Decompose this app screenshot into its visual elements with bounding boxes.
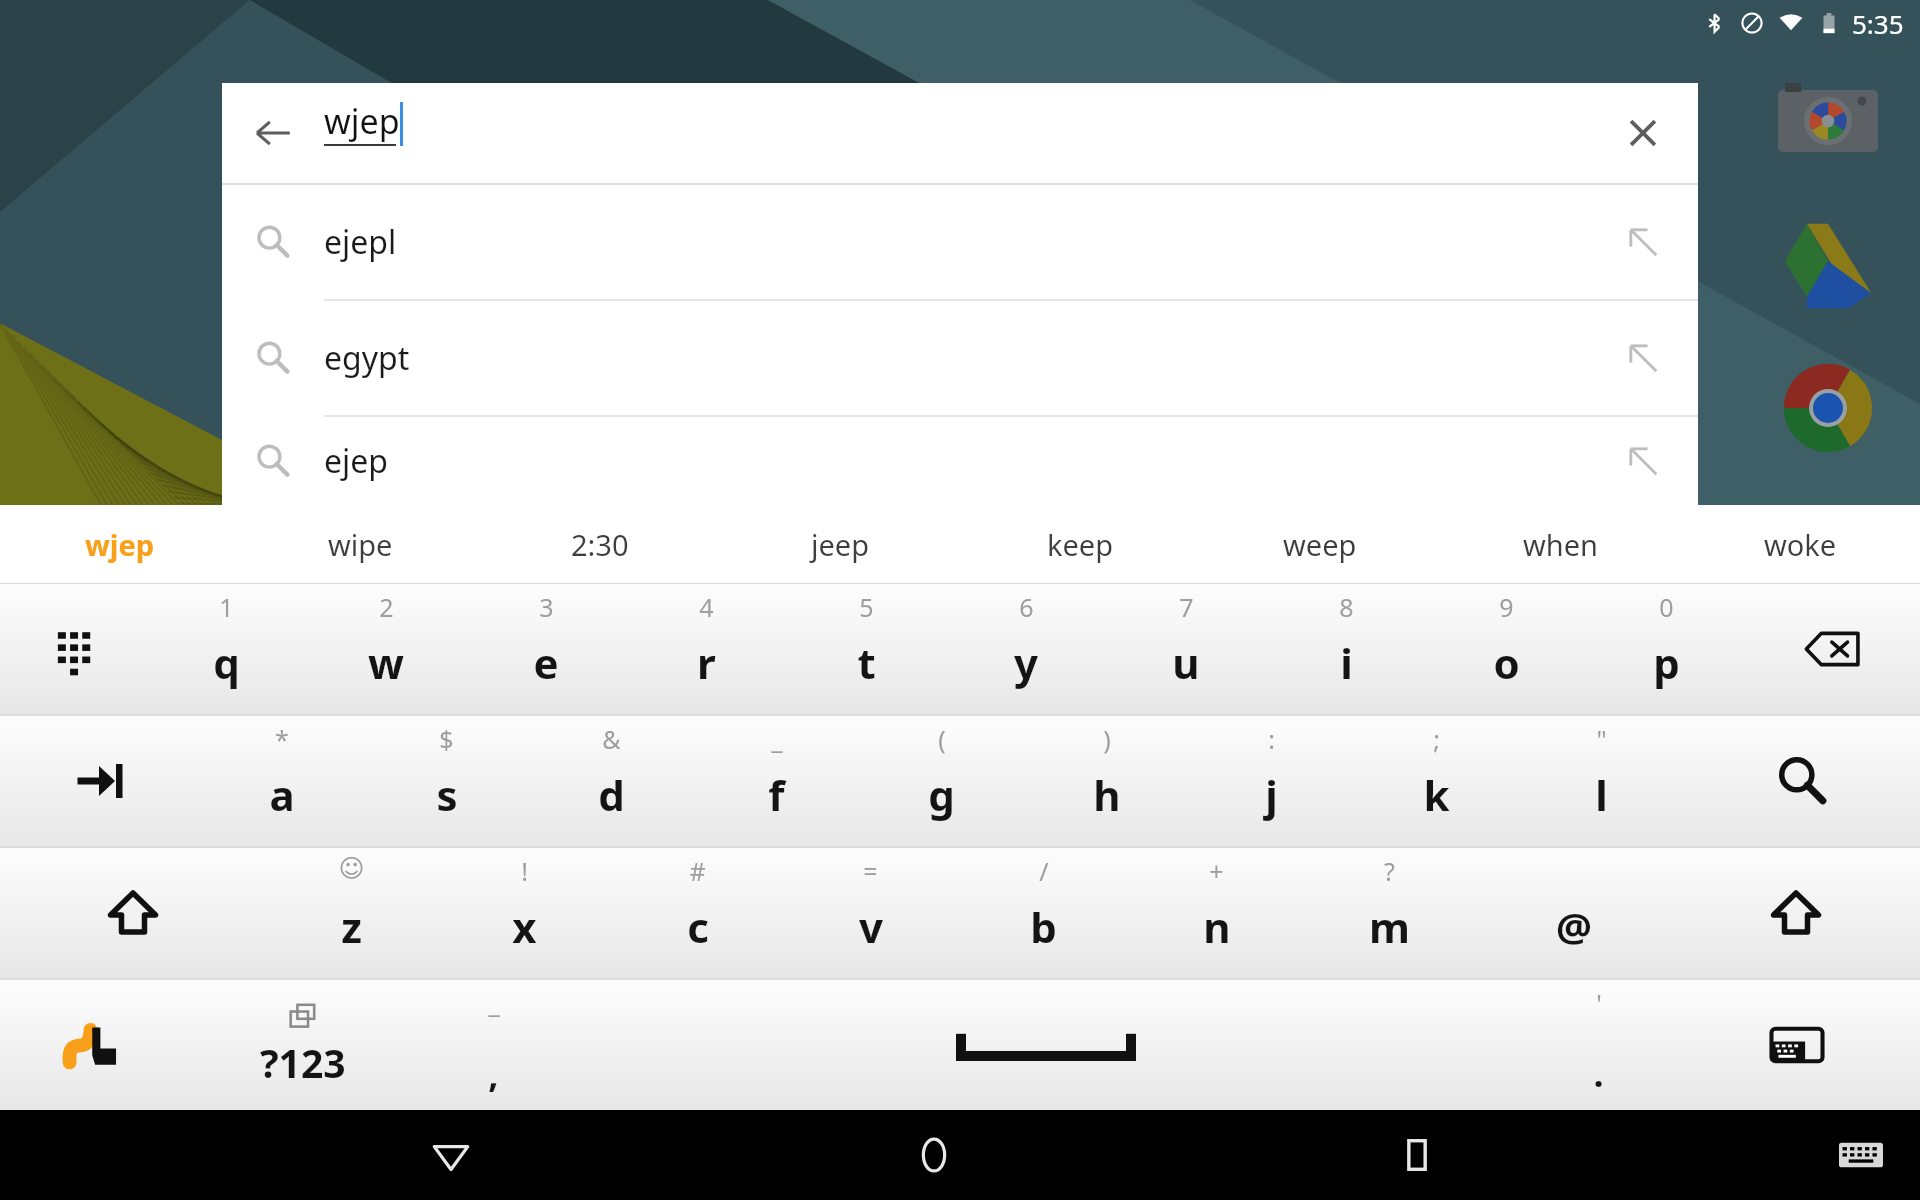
staticText: p: [1653, 634, 1680, 691]
staticText: @: [1556, 899, 1592, 953]
staticText: ?: [1384, 854, 1395, 888]
button[interactable]: 2:30: [480, 505, 720, 583]
button[interactable]: Number pad: [0, 584, 146, 714]
staticText: .: [1593, 1049, 1604, 1098]
button[interactable]: weep: [1200, 505, 1440, 583]
staticText: wjep: [324, 98, 400, 144]
staticText: wipe: [328, 525, 393, 564]
staticText: !: [521, 854, 528, 888]
staticText: weep: [1283, 525, 1357, 564]
button[interactable]: $: [364, 716, 529, 846]
staticText: 8: [1339, 590, 1354, 624]
button[interactable]: Chrome: [1772, 352, 1884, 464]
staticText: u: [1172, 634, 1200, 691]
staticText: :: [1268, 722, 1275, 756]
staticText: ☺: [338, 854, 365, 883]
button[interactable]: 8: [1266, 584, 1426, 714]
button[interactable]: Tab: [0, 716, 200, 846]
button[interactable]: :: [1189, 716, 1354, 846]
button[interactable]: woke: [1680, 505, 1920, 583]
button[interactable]: ": [1519, 716, 1684, 846]
button[interactable]: #: [611, 848, 784, 978]
staticText: z: [341, 898, 362, 955]
button[interactable]: Insert egypt: [1588, 301, 1698, 415]
button[interactable]: Backspace: [1746, 584, 1920, 714]
button[interactable]: Insert ejep: [1588, 417, 1698, 505]
button[interactable]: Back: [401, 1110, 501, 1200]
staticText: 2: [379, 590, 394, 624]
button[interactable]: 1: [146, 584, 306, 714]
button[interactable]: wipe: [240, 505, 480, 583]
staticText: /: [1039, 854, 1049, 888]
staticText: f: [768, 766, 785, 823]
button[interactable]: Shift: [0, 848, 265, 978]
staticText: n: [1203, 898, 1231, 955]
staticText: ;: [1433, 722, 1440, 756]
button[interactable]: Space: [568, 980, 1524, 1110]
button[interactable]: !: [438, 848, 611, 978]
staticText: e: [533, 634, 559, 691]
button[interactable]: keep: [960, 505, 1200, 583]
button[interactable]: +: [1130, 848, 1303, 978]
button[interactable]: (: [859, 716, 1024, 846]
staticText: h: [1093, 766, 1121, 823]
button[interactable]: _: [419, 980, 568, 1110]
staticText: 9: [1499, 590, 1514, 624]
staticText: 2:30: [571, 525, 629, 564]
button[interactable]: Back: [222, 83, 324, 183]
button[interactable]: @: [1476, 848, 1672, 978]
staticText: b: [1030, 898, 1057, 955]
staticText: jeep: [811, 525, 870, 564]
button[interactable]: 9: [1426, 584, 1586, 714]
button[interactable]: 6: [946, 584, 1106, 714]
staticText: 1: [219, 590, 234, 624]
button[interactable]: ejepl: [222, 185, 1698, 299]
button[interactable]: Hide keyboard: [1673, 980, 1920, 1110]
button[interactable]: Switch keyboard: [1816, 1110, 1906, 1200]
staticText: 3: [539, 590, 554, 624]
staticText: l: [1595, 766, 1608, 823]
button[interactable]: Gesture typing: [0, 980, 187, 1110]
button[interactable]: when: [1440, 505, 1680, 583]
staticText: when: [1523, 525, 1598, 564]
button[interactable]: _: [694, 716, 859, 846]
button[interactable]: jeep: [720, 505, 960, 583]
button[interactable]: Drive: [1772, 210, 1884, 322]
button[interactable]: ?123: [187, 980, 419, 1110]
button[interactable]: /: [957, 848, 1130, 978]
staticText: w: [368, 634, 404, 691]
button[interactable]: Search: [1684, 716, 1920, 846]
staticText: $: [439, 722, 454, 756]
button[interactable]: 5: [786, 584, 946, 714]
button[interactable]: ejep: [222, 417, 1698, 505]
button[interactable]: ': [1524, 980, 1673, 1110]
button[interactable]: Camera: [1772, 64, 1884, 176]
button[interactable]: Clear: [1588, 83, 1698, 183]
button[interactable]: =: [784, 848, 957, 978]
button[interactable]: 3: [466, 584, 626, 714]
button[interactable]: Recent apps: [1367, 1110, 1467, 1200]
button[interactable]: ?: [1303, 848, 1476, 978]
staticText: 4: [699, 590, 714, 624]
staticText: m: [1369, 898, 1410, 955]
button[interactable]: egypt: [222, 301, 1698, 415]
button[interactable]: Shift: [1672, 848, 1920, 978]
button[interactable]: 0: [1586, 584, 1746, 714]
button[interactable]: ☺: [265, 848, 438, 978]
staticText: g: [928, 766, 955, 823]
staticText: ": [1596, 722, 1607, 756]
button[interactable]: Insert ejepl: [1588, 185, 1698, 299]
button[interactable]: 2: [306, 584, 466, 714]
button[interactable]: Home: [884, 1110, 984, 1200]
button[interactable]: 4: [626, 584, 786, 714]
button[interactable]: 7: [1106, 584, 1266, 714]
button[interactable]: wjep: [0, 505, 240, 583]
button[interactable]: ;: [1354, 716, 1519, 846]
staticText: o: [1493, 634, 1520, 691]
button[interactable]: *: [200, 716, 364, 846]
staticText: 5: [859, 590, 874, 624]
button[interactable]: ): [1024, 716, 1189, 846]
staticText: d: [598, 766, 625, 823]
button[interactable]: &: [529, 716, 694, 846]
staticText: v: [859, 898, 883, 955]
